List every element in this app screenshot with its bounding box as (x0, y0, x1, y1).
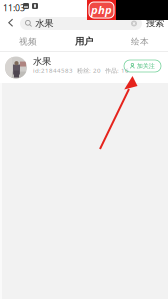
button[interactable]: 搜索 (144, 15, 166, 31)
staticText: 加关注 (137, 62, 155, 70)
staticText: id:21844583 粉丝: 20 作品: 16 (33, 66, 129, 75)
staticText: 水果 (33, 55, 51, 67)
button[interactable]: 水果 (20, 17, 142, 30)
button[interactable]: 绘本 (112, 33, 168, 50)
button[interactable]: 用户 (56, 33, 112, 50)
button[interactable]: Back (1, 13, 21, 33)
button[interactable]: 水果 (0, 52, 168, 83)
staticText: 搜索 (146, 17, 164, 29)
staticText: 水果 (35, 18, 53, 29)
staticText: php (91, 2, 112, 17)
staticText: 11:03 (3, 2, 25, 14)
button[interactable]: 视频 (0, 33, 56, 50)
staticText: 用户 (75, 36, 93, 47)
staticText: 绘本 (131, 36, 149, 47)
staticText: 视频 (19, 36, 37, 47)
button[interactable]: 加关注 (124, 60, 161, 72)
